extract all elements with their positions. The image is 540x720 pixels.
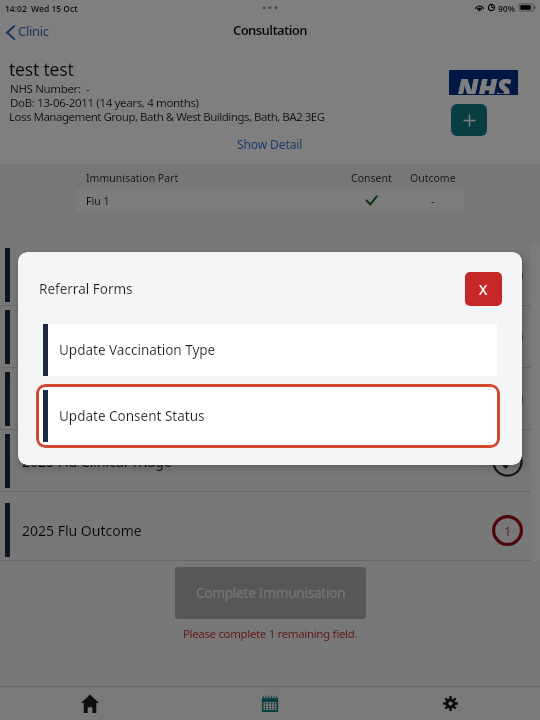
staticText: Referral Forms bbox=[39, 280, 133, 298]
staticText: 2025 Flu Outcome bbox=[22, 521, 142, 540]
button[interactable]: Home bbox=[0, 687, 180, 720]
button[interactable]: Update Consent Status bbox=[36, 384, 500, 448]
button[interactable]: Add bbox=[451, 104, 487, 136]
staticText: 2025 Flu Consent bbox=[22, 328, 136, 347]
staticText: DoB: 13-06-2011 (14 years, 4 months) bbox=[10, 95, 199, 111]
button[interactable]: 2025 Flu Consent bbox=[0, 306, 540, 368]
staticText: 1 bbox=[504, 522, 512, 540]
staticText: Loss Management Group, Bath & West Build… bbox=[9, 109, 325, 125]
staticText: NHS bbox=[457, 69, 511, 94]
staticText: Immunisation Part bbox=[86, 171, 179, 185]
staticText: Complete Immunisation bbox=[196, 584, 346, 602]
staticText: X bbox=[479, 280, 488, 299]
button[interactable]: Update Vaccination Type bbox=[43, 324, 497, 376]
staticText: Wed 15 Oct bbox=[31, 3, 78, 15]
staticText: Consent bbox=[351, 171, 392, 185]
button[interactable]: Show Detail bbox=[237, 136, 303, 152]
staticText: Flu 1 bbox=[86, 194, 110, 208]
staticText: 90% bbox=[498, 3, 516, 15]
button[interactable]: Close bbox=[465, 272, 502, 306]
staticText: Update Vaccination Type bbox=[59, 341, 216, 359]
button[interactable]: Clinic bbox=[2, 21, 53, 43]
staticText: Please complete 1 remaining field. bbox=[183, 626, 358, 642]
staticText: Outcome bbox=[410, 171, 456, 185]
staticText: 2025 Flu Clinical Triage bbox=[22, 452, 172, 471]
staticText: 14:02 bbox=[5, 3, 27, 15]
button[interactable]: 2025 Flu Pre-Screening bbox=[0, 244, 540, 306]
staticText: 2025 Flu Clinical Triage bbox=[22, 390, 172, 409]
staticText: - bbox=[431, 194, 435, 208]
staticText: Consultation bbox=[233, 21, 307, 39]
button[interactable]: 2025 Flu Outcome bbox=[0, 499, 540, 561]
staticText: test test bbox=[9, 57, 74, 81]
staticText: Update Consent Status bbox=[59, 407, 205, 425]
button[interactable]: Calendar bbox=[180, 687, 360, 720]
button[interactable]: Settings bbox=[360, 687, 540, 720]
staticText: 2025 Flu Pre-Screening bbox=[22, 266, 173, 285]
button[interactable]: Complete Immunisation bbox=[175, 567, 366, 619]
staticText: Clinic bbox=[18, 22, 49, 40]
staticText: NHS Number: - bbox=[10, 81, 90, 97]
button[interactable]: 2025 Flu Clinical Triage bbox=[0, 368, 540, 430]
button[interactable]: 2025 Flu Clinical Triage bbox=[0, 430, 540, 492]
